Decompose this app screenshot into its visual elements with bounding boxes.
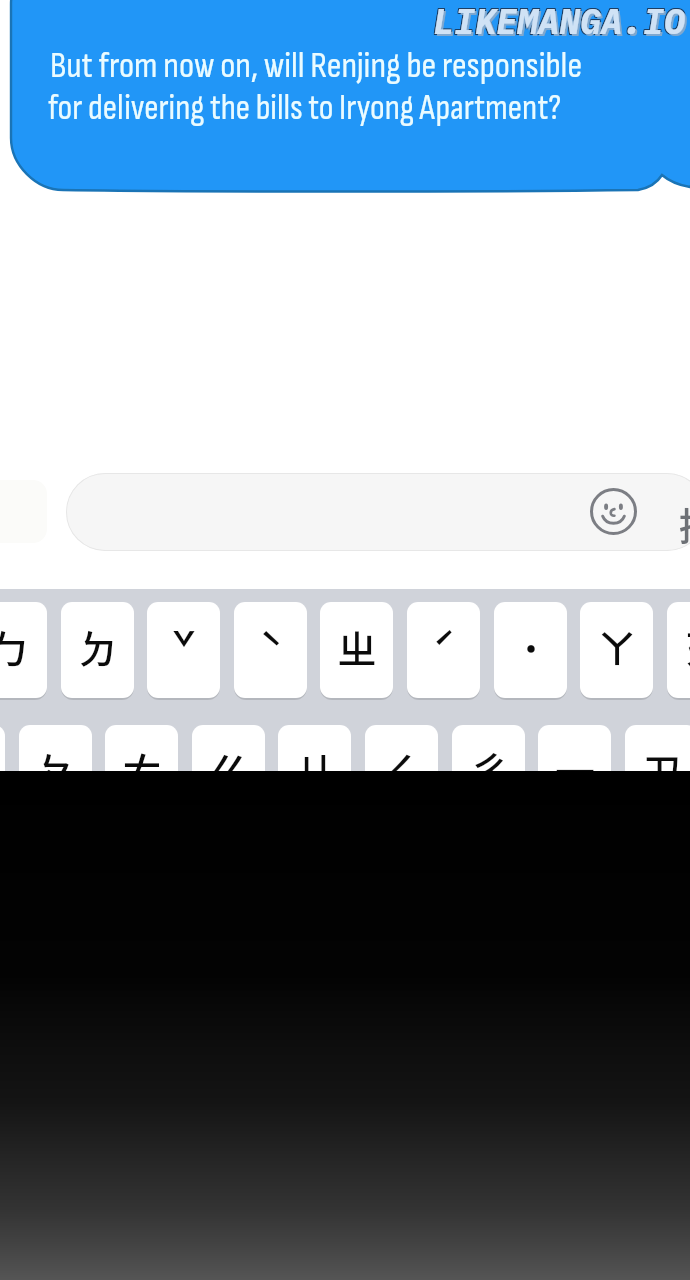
staticText: ˙ — [521, 618, 541, 676]
staticText: ㄚ — [597, 618, 637, 676]
button[interactable]: ˊ — [407, 602, 480, 698]
button[interactable]: ˇ — [147, 602, 220, 698]
button[interactable]: Input method — [672, 487, 690, 541]
button[interactable]: ㄆ — [19, 725, 92, 821]
button[interactable]: ㄊ — [105, 725, 178, 821]
button[interactable]: Emoji — [590, 488, 637, 535]
staticText: ㄓ — [337, 618, 377, 676]
staticText: LIKEMANGA.IO — [433, 0, 686, 45]
staticText: ㄐ — [295, 741, 335, 799]
button[interactable]: Message input field — [66, 473, 690, 551]
button[interactable]: ㄗ — [625, 725, 690, 821]
button[interactable]: ㄍ — [192, 725, 265, 821]
button[interactable]: LIKEMANGA.IO watermark — [433, 0, 686, 44]
staticText: 拼 — [679, 496, 690, 550]
button[interactable]: ˋ — [234, 602, 307, 698]
staticText: LIKEMANGA.IO — [432, 0, 685, 44]
staticText: LIKEMANGA.IO — [432, 0, 685, 45]
staticText: ˇ — [172, 618, 196, 676]
button[interactable]: ㄑ — [365, 725, 438, 821]
staticText: LIKEMANGA.IO — [433, 0, 686, 43]
staticText: for delivering the bills to Iryong Apart… — [48, 87, 561, 129]
staticText: But from now on, will Renjing be respons… — [50, 44, 583, 88]
button[interactable]: ㄓ — [320, 602, 393, 698]
staticText: LIKEMANGA.IO — [434, 0, 687, 44]
staticText: ㄆ — [36, 741, 76, 799]
button[interactable]: ㄉ — [61, 602, 134, 698]
button[interactable]: ㄔ — [452, 725, 525, 821]
staticText: ㄑ — [382, 741, 422, 799]
button[interactable]: ㄐ — [278, 725, 351, 821]
button[interactable]: ㄅ — [0, 725, 5, 821]
button[interactable]: 一 — [538, 725, 611, 821]
staticText: ㄍ — [209, 741, 249, 799]
staticText: LIKEMANGA.IO — [433, 0, 686, 44]
staticText: ㄅ — [0, 618, 31, 676]
staticText: LIKEMANGA.IO — [435, 0, 688, 46]
staticText: ˊ — [432, 618, 456, 676]
button[interactable]: ㄚ — [580, 602, 653, 698]
button[interactable]: ㄞ — [667, 602, 690, 698]
staticText: LIKEMANGA.IO — [432, 0, 685, 43]
staticText: ㄗ — [642, 741, 682, 799]
button[interactable]: ˙ — [494, 602, 567, 698]
button[interactable]: Message bubble — [0, 0, 690, 1280]
staticText: 一 — [555, 741, 595, 799]
button[interactable]: ㄅ — [0, 602, 47, 698]
staticText: LIKEMANGA.IO — [434, 0, 687, 43]
staticText: ㄞ — [684, 618, 690, 676]
staticText: LIKEMANGA.IO — [434, 0, 687, 45]
staticText: ˋ — [259, 618, 283, 676]
staticText: ㄉ — [78, 618, 118, 676]
staticText: ㄊ — [122, 741, 162, 799]
staticText: ㄔ — [469, 741, 509, 799]
